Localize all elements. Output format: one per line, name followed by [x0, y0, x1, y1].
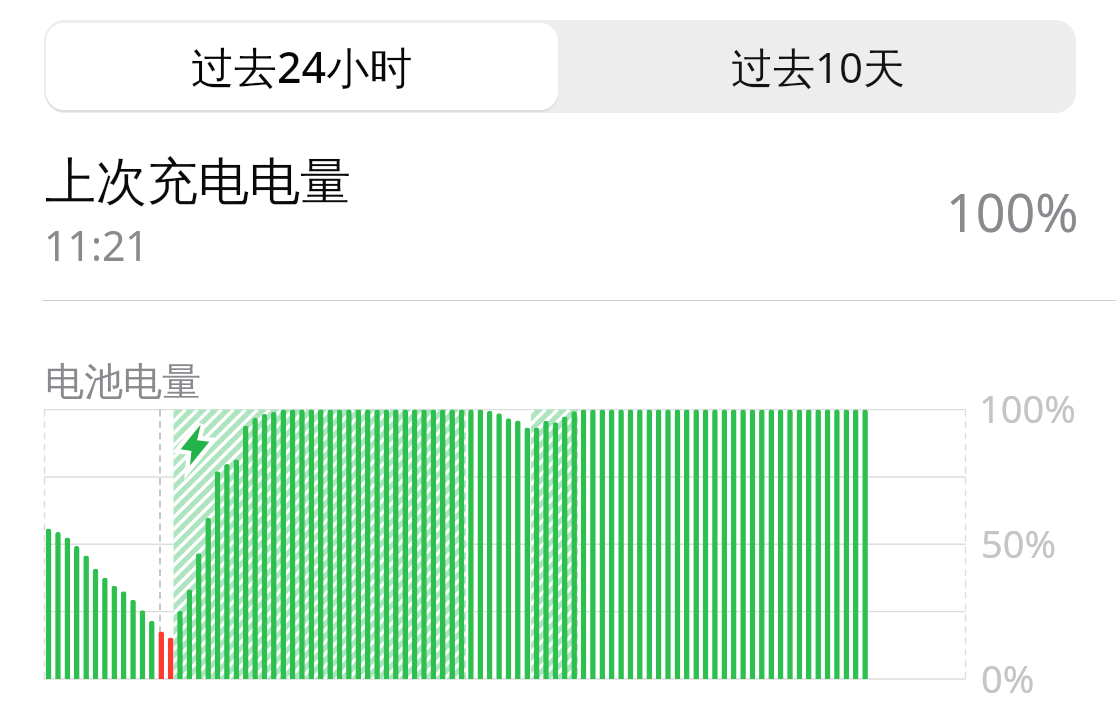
button[interactable]: 上次充电电量: [44, 145, 1076, 275]
staticText: 0%: [981, 652, 1035, 704]
staticText: 电池电量: [45, 357, 201, 406]
button[interactable]: 过去24小时: [46, 23, 558, 110]
staticText: 上次充电电量: [45, 150, 351, 214]
staticText: 50%: [981, 517, 1057, 569]
staticText: 100%: [946, 176, 1079, 247]
staticText: 过去24小时: [191, 37, 413, 96]
staticText: 100%: [979, 382, 1076, 434]
staticText: 过去10天: [731, 38, 906, 95]
staticText: 11:21: [44, 217, 149, 273]
button[interactable]: 过去10天: [560, 20, 1076, 113]
